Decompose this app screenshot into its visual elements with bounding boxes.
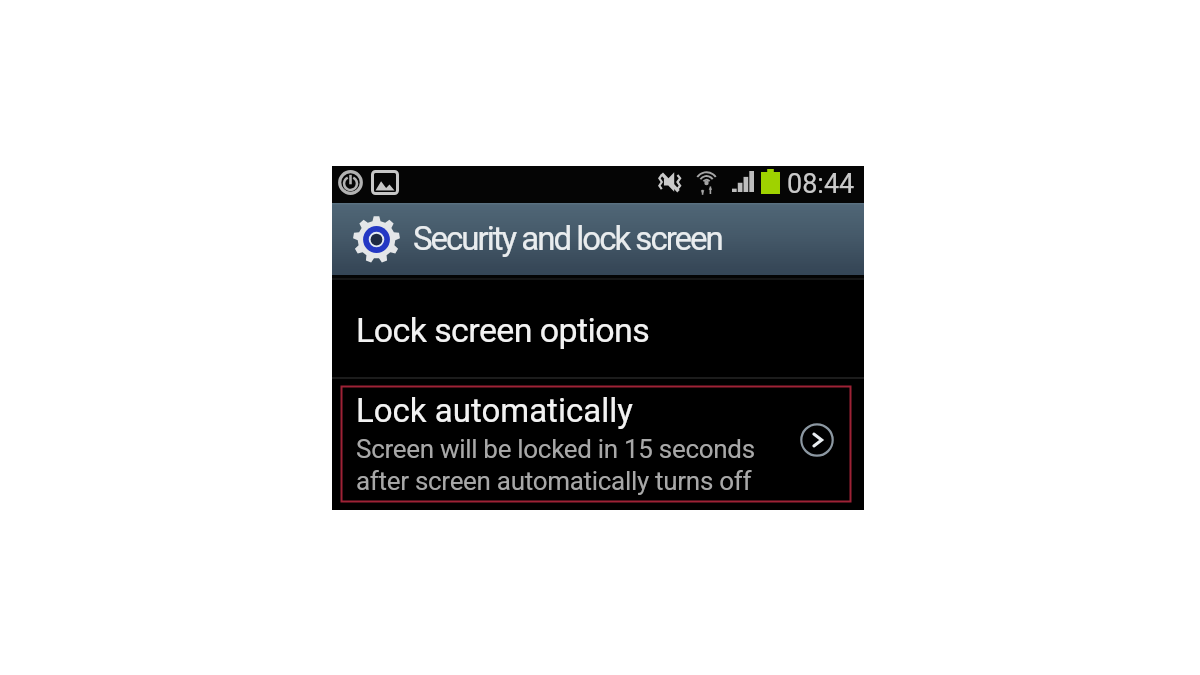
button[interactable]: Lock automatically (332, 379, 864, 510)
staticText: Lock screen options (356, 310, 650, 350)
staticText: Screen will be locked in 15 seconds afte… (356, 434, 755, 496)
button[interactable]: Lock screen options (332, 280, 864, 377)
staticText: 08:44 (787, 168, 855, 200)
staticText: Security and lock screen (413, 219, 722, 258)
button[interactable]: Open lock automatically settings (800, 423, 834, 457)
staticText: Lock automatically (356, 391, 633, 430)
button[interactable]: Security and lock screen (332, 203, 864, 275)
